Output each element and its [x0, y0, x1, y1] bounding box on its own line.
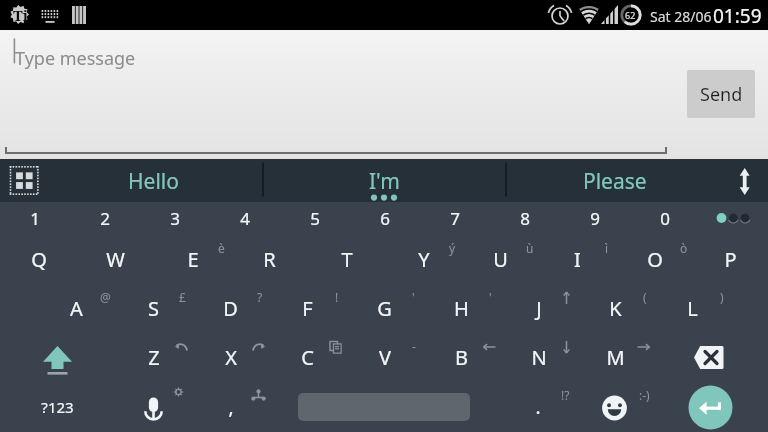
- button[interactable]: Space: [269, 382, 499, 431]
- button[interactable]: Enter: [653, 382, 768, 431]
- staticText: W: [106, 246, 125, 273]
- button[interactable]: L: [654, 284, 731, 333]
- button[interactable]: Emoji: [576, 382, 653, 431]
- staticText: Sat 28/06: [650, 7, 712, 26]
- staticText: 0: [660, 207, 670, 230]
- button[interactable]: T: [308, 235, 385, 284]
- staticText: Please: [583, 167, 647, 196]
- staticText: L: [687, 295, 698, 322]
- button[interactable]: K: [577, 284, 654, 333]
- button[interactable]: I: [539, 235, 616, 284]
- staticText: C: [301, 344, 314, 371]
- staticText: Hello: [128, 167, 179, 196]
- staticText: Ti: [13, 5, 29, 25]
- staticText: è: [218, 240, 225, 256]
- button[interactable]: H: [423, 284, 500, 333]
- button[interactable]: 0: [630, 202, 700, 235]
- button[interactable]: 3: [140, 202, 210, 235]
- button[interactable]: 5: [280, 202, 350, 235]
- button[interactable]: O: [616, 235, 693, 284]
- button[interactable]: Shift: [0, 333, 115, 382]
- button[interactable]: Q: [0, 235, 77, 284]
- button[interactable]: 7: [420, 202, 490, 235]
- staticText: G: [377, 295, 392, 322]
- staticText: 62: [625, 9, 636, 21]
- button[interactable]: J: [500, 284, 577, 333]
- staticText: I: [574, 246, 581, 273]
- staticText: :-): [639, 387, 650, 403]
- button[interactable]: ,: [192, 382, 269, 431]
- button[interactable]: D: [192, 284, 269, 333]
- staticText: E: [187, 246, 199, 273]
- button[interactable]: W: [77, 235, 154, 284]
- button[interactable]: B: [423, 333, 500, 382]
- staticText: @: [100, 289, 111, 305]
- staticText: X: [225, 344, 237, 371]
- staticText: ?123: [41, 397, 74, 417]
- staticText: H: [454, 295, 469, 322]
- staticText: U: [493, 246, 508, 273]
- staticText: Q: [31, 246, 47, 273]
- button[interactable]: Expand: [725, 159, 768, 202]
- button[interactable]: Send: [687, 70, 755, 118]
- staticText: D: [223, 295, 238, 322]
- button[interactable]: [44, 159, 262, 202]
- button[interactable]: [262, 159, 506, 202]
- button[interactable]: Backspace: [653, 333, 768, 382]
- staticText: 9: [590, 207, 600, 230]
- button[interactable]: 8: [490, 202, 560, 235]
- staticText: -: [412, 338, 416, 354]
- staticText: T: [341, 246, 353, 273]
- staticText: !: [335, 289, 339, 305]
- staticText: V: [379, 344, 391, 371]
- button[interactable]: [505, 159, 725, 202]
- button[interactable]: 4: [210, 202, 280, 235]
- staticText: O: [647, 246, 663, 273]
- button[interactable]: A: [38, 284, 115, 333]
- staticText: N: [531, 344, 547, 371]
- staticText: ,: [228, 394, 234, 420]
- button[interactable]: R: [231, 235, 308, 284]
- staticText: 1: [30, 207, 40, 230]
- staticText: 8: [520, 207, 530, 230]
- staticText: .: [535, 394, 541, 420]
- staticText: ': [412, 289, 415, 305]
- button[interactable]: F: [269, 284, 346, 333]
- staticText: F: [302, 295, 313, 322]
- staticText: ý: [449, 240, 456, 256]
- button[interactable]: Voice input: [115, 382, 192, 431]
- staticText: J: [536, 295, 542, 322]
- staticText: 5: [310, 207, 320, 230]
- staticText: 6: [380, 207, 390, 230]
- button[interactable]: 1: [0, 202, 70, 235]
- staticText: Y: [418, 246, 430, 273]
- button[interactable]: Z: [115, 333, 192, 382]
- button[interactable]: M: [577, 333, 654, 382]
- button[interactable]: .: [499, 382, 576, 431]
- staticText: 7: [450, 207, 460, 230]
- button[interactable]: P: [693, 235, 768, 284]
- staticText: I'm: [369, 167, 400, 196]
- staticText: B: [455, 344, 468, 371]
- button[interactable]: U: [462, 235, 539, 284]
- button[interactable]: Clipboard: [0, 159, 44, 202]
- button[interactable]: N: [500, 333, 577, 382]
- button[interactable]: ?123: [0, 382, 115, 431]
- staticText: R: [263, 246, 276, 273]
- button[interactable]: Y: [385, 235, 462, 284]
- button[interactable]: X: [192, 333, 269, 382]
- staticText: 01:59: [713, 3, 762, 29]
- button[interactable]: E: [154, 235, 231, 284]
- button[interactable]: C: [269, 333, 346, 382]
- button[interactable]: S: [115, 284, 192, 333]
- staticText: 4: [240, 207, 250, 230]
- button[interactable]: 6: [350, 202, 420, 235]
- button[interactable]: G: [346, 284, 423, 333]
- button[interactable]: V: [346, 333, 423, 382]
- button[interactable]: 2: [70, 202, 140, 235]
- button[interactable]: 9: [560, 202, 630, 235]
- staticText: ò: [680, 240, 688, 256]
- staticText: P: [724, 246, 737, 273]
- staticText: Type message: [15, 46, 136, 71]
- staticText: M: [606, 344, 625, 371]
